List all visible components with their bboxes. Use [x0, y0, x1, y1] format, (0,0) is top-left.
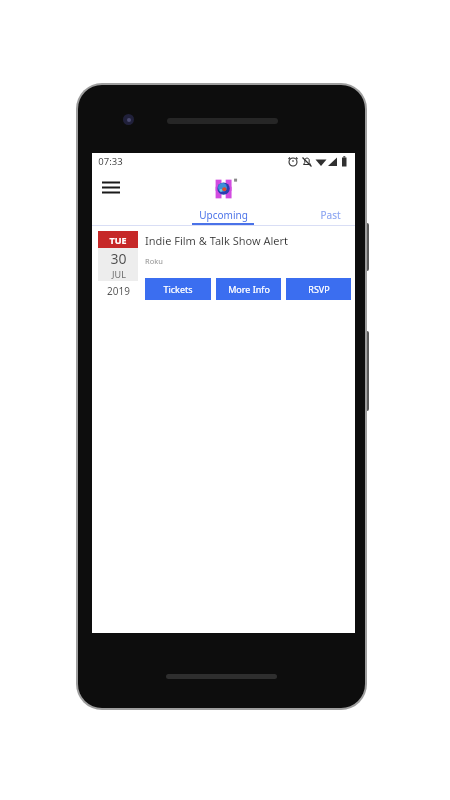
staticText: 30	[110, 249, 127, 268]
staticText: Upcoming	[199, 208, 248, 222]
staticText: Tickets	[163, 283, 193, 295]
button[interactable]: RSVP	[286, 278, 351, 300]
button[interactable]: Past	[320, 205, 365, 225]
button[interactable]: Upcoming	[184, 205, 262, 225]
staticText: Indie Film & Talk Show Alert	[145, 233, 288, 248]
staticText: TUE	[109, 234, 127, 246]
button[interactable]: More Info	[216, 278, 281, 300]
staticText: More Info	[228, 283, 270, 295]
staticText: JUL	[112, 268, 126, 280]
button[interactable]: Logo	[210, 177, 238, 201]
staticText: 07:33	[98, 155, 123, 168]
button[interactable]: Tickets	[145, 278, 211, 300]
button[interactable]: Menu	[95, 170, 127, 205]
staticText: RSVP	[308, 283, 330, 295]
staticText: Roku	[145, 256, 163, 266]
staticText: 2019	[107, 284, 130, 298]
staticText: Past	[320, 208, 341, 222]
